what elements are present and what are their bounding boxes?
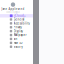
staticText: Battery	[13, 45, 22, 48]
staticText: Display	[13, 29, 22, 33]
staticText: Jane Appleseed	[1, 7, 24, 11]
staticText: General	[13, 18, 24, 21]
staticText: iCloud+	[14, 14, 26, 17]
staticText: Privacy	[13, 25, 21, 29]
staticText: Accessibility	[13, 22, 29, 25]
staticText: Wallpaper	[13, 33, 26, 37]
staticText: Siri	[13, 37, 17, 41]
staticText: Face ID	[13, 41, 22, 45]
staticText: Apple Account, iCloud	[6, 11, 20, 13]
